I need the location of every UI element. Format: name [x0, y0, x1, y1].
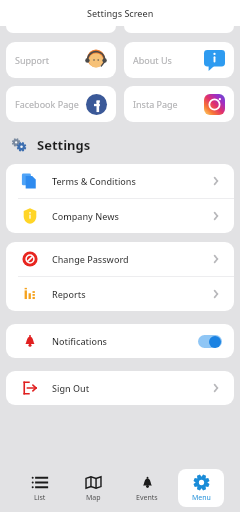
- button[interactable]: Events: [124, 469, 170, 507]
- button[interactable]: Terms & Conditions: [6, 164, 234, 199]
- staticText: Settings Screen: [87, 7, 154, 19]
- staticText: Menu: [192, 493, 211, 503]
- button[interactable]: Sign Out: [6, 371, 234, 405]
- button[interactable]: About Us: [124, 42, 234, 78]
- button[interactable]: Previous card: [6, 26, 116, 33]
- staticText: Facebook Page: [15, 98, 86, 110]
- staticText: Terms & Conditions: [52, 175, 210, 187]
- button[interactable]: Insta Page: [124, 86, 234, 122]
- staticText: Notifications: [52, 335, 198, 347]
- staticText: Map: [86, 493, 101, 503]
- button[interactable]: Notifications: [6, 324, 234, 358]
- button[interactable]: Map: [70, 469, 116, 507]
- button[interactable]: Menu: [178, 469, 224, 507]
- button[interactable]: List: [16, 469, 62, 507]
- staticText: Sign Out: [52, 382, 210, 394]
- button[interactable]: Company News: [6, 199, 234, 233]
- staticText: Events: [136, 493, 158, 503]
- button[interactable]: Reports: [6, 277, 234, 311]
- staticText: Company News: [52, 210, 210, 222]
- staticText: Reports: [52, 288, 210, 300]
- staticText: Settings: [37, 136, 91, 154]
- button[interactable]: Support: [6, 42, 116, 78]
- staticText: About Us: [133, 54, 204, 66]
- button[interactable]: Previous card: [124, 26, 234, 33]
- button[interactable]: Change Password: [6, 242, 234, 277]
- staticText: Insta Page: [133, 98, 204, 110]
- button[interactable]: Facebook Page: [6, 86, 116, 122]
- button[interactable]: Notifications toggle: [198, 335, 222, 348]
- staticText: List: [34, 493, 46, 503]
- staticText: Support: [15, 54, 85, 66]
- staticText: Change Password: [52, 253, 210, 265]
